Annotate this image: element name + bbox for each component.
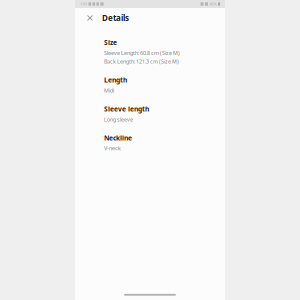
staticText: Concept [104, 292, 130, 300]
staticText: 1:01 [80, 1, 87, 7]
staticText: Midi [104, 87, 114, 94]
staticText: Length [104, 75, 127, 84]
staticText: Sleeve length [104, 104, 149, 113]
staticText: Long sleeve [104, 116, 133, 123]
staticText: Back Length: 121.3 cm (Size M) [104, 58, 179, 65]
button[interactable]: Close [81, 9, 99, 27]
staticText: Sleeve Length: 60.8 cm (Size M) [104, 49, 180, 56]
staticText: 45% [209, 1, 216, 7]
staticText: Details [102, 13, 129, 23]
staticText: Neckline [104, 133, 132, 142]
staticText: V-neck [104, 145, 121, 152]
staticText: Size [104, 38, 117, 47]
